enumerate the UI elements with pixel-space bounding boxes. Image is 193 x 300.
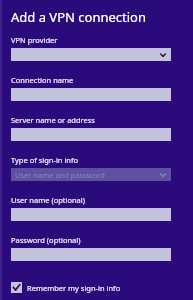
staticText: VPN provider	[11, 35, 58, 45]
staticText: Remember my sign-in info	[27, 283, 121, 293]
button[interactable]: Type of sign-in info dropdown	[11, 168, 171, 181]
button[interactable]: Remember my sign-in info	[11, 282, 121, 293]
staticText: Server name or address	[11, 115, 95, 125]
button[interactable]: VPN provider dropdown	[11, 48, 171, 61]
staticText: User name and password	[15, 170, 105, 180]
staticText: Connection name	[11, 75, 74, 85]
staticText: User name (optional)	[11, 195, 85, 205]
staticText: Add a VPN connection	[11, 8, 146, 26]
staticText: Password (optional)	[11, 235, 81, 245]
staticText: Type of sign-in info	[11, 155, 79, 165]
